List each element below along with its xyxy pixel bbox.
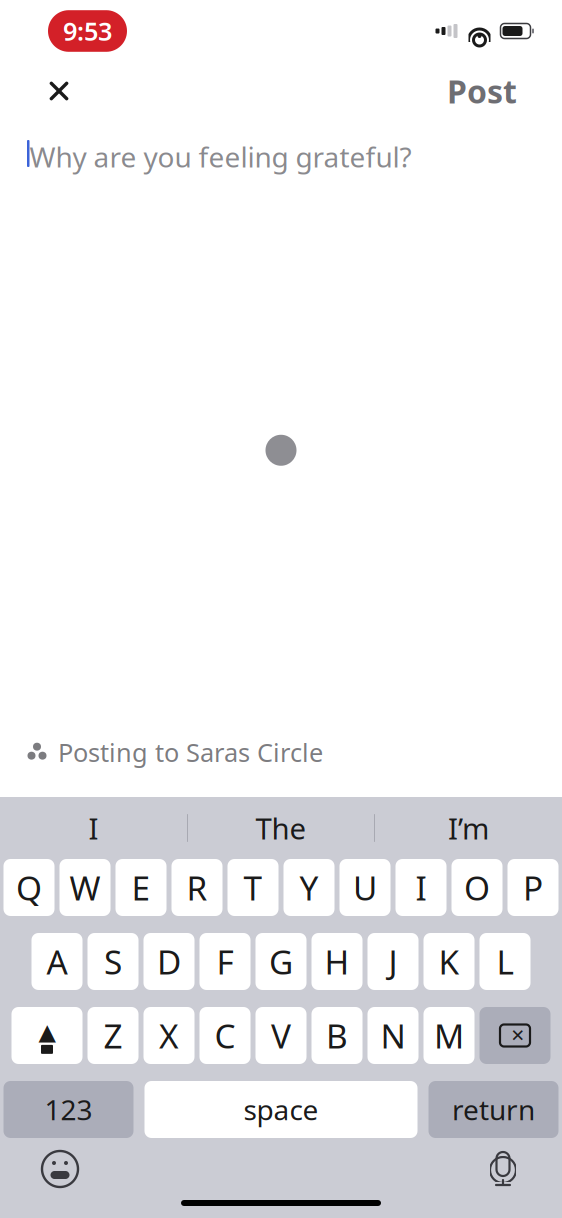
button[interactable]: Y [283, 859, 334, 916]
staticText: Post [447, 70, 517, 112]
button[interactable]: D [143, 933, 194, 990]
staticText: I [415, 865, 426, 910]
button[interactable]: R [171, 859, 222, 916]
button[interactable]: P [507, 859, 558, 916]
button[interactable]: E [115, 859, 166, 916]
staticText: 123 [44, 1091, 92, 1128]
staticText: X [159, 1013, 179, 1058]
button[interactable]: T [227, 859, 278, 916]
staticText: Why are you feeling grateful? [29, 138, 411, 175]
staticText: K [438, 939, 459, 984]
button[interactable]: A [31, 933, 82, 990]
button[interactable]: U [339, 859, 390, 916]
staticText: S [104, 939, 122, 984]
button[interactable]: H [311, 933, 362, 990]
button[interactable]: Shift [11, 1007, 82, 1064]
button[interactable]: return [428, 1081, 558, 1138]
button[interactable]: J [367, 933, 418, 990]
staticText: ▲ [38, 1019, 55, 1045]
button[interactable]: X [143, 1007, 194, 1064]
button[interactable]: I’m [375, 803, 562, 853]
button[interactable]: K [423, 933, 474, 990]
button[interactable]: G [255, 933, 306, 990]
staticText: U [353, 865, 377, 910]
staticText: ✕ [510, 1026, 525, 1045]
staticText: I [88, 808, 98, 847]
button[interactable]: W [59, 859, 110, 916]
staticText: B [326, 1013, 348, 1058]
staticText: A [46, 939, 67, 984]
button[interactable]: 123 [3, 1081, 133, 1138]
staticText: I’m [448, 808, 489, 847]
button[interactable]: Post [427, 62, 537, 120]
staticText: space [243, 1091, 318, 1128]
staticText: Z [103, 1013, 122, 1058]
staticText: E [131, 865, 150, 910]
button[interactable]: Close [31, 67, 87, 115]
staticText: P [523, 865, 543, 910]
button[interactable]: L [479, 933, 530, 990]
button[interactable]: O [451, 859, 502, 916]
button[interactable]: Emoji [40, 1149, 80, 1189]
button[interactable]: M [423, 1007, 474, 1064]
button[interactable]: Dictate [486, 1149, 520, 1189]
button[interactable]: Q [3, 859, 54, 916]
staticText: M [434, 1013, 464, 1058]
staticText: J [388, 939, 397, 984]
button[interactable]: The [188, 803, 374, 853]
staticText: T [243, 865, 262, 910]
button[interactable]: N [367, 1007, 418, 1064]
button[interactable]: I [395, 859, 446, 916]
staticText: F [216, 939, 233, 984]
staticText: L [496, 939, 513, 984]
button[interactable]: V [255, 1007, 306, 1064]
staticText: Posting to Saras Circle [58, 735, 323, 769]
button[interactable]: C [199, 1007, 250, 1064]
staticText: N [380, 1013, 405, 1058]
button[interactable]: Z [87, 1007, 138, 1064]
button[interactable]: I [0, 803, 187, 853]
staticText: 9:53 [63, 14, 112, 48]
button[interactable]: Delete [479, 1007, 550, 1064]
staticText: G [269, 939, 293, 984]
button[interactable]: F [199, 933, 250, 990]
staticText: C [214, 1013, 235, 1058]
staticText: The [255, 808, 306, 847]
staticText: W [69, 865, 100, 910]
button[interactable]: space [144, 1081, 417, 1138]
staticText: D [157, 939, 181, 984]
staticText: O [464, 865, 490, 910]
button[interactable]: Posting to Saras Circle [0, 725, 562, 779]
staticText: Y [299, 865, 318, 910]
staticText: Q [16, 865, 42, 910]
staticText: R [186, 865, 207, 910]
button[interactable]: S [87, 933, 138, 990]
staticText: V [271, 1013, 291, 1058]
staticText: H [324, 939, 349, 984]
button[interactable]: B [311, 1007, 362, 1064]
staticText: return [452, 1091, 535, 1128]
